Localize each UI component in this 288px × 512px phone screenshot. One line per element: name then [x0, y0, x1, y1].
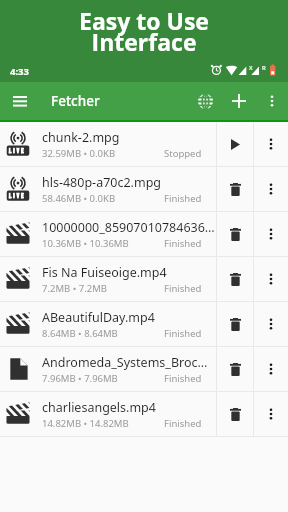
staticText: Easy to Use Interface	[0, 5, 288, 58]
staticText: Finished	[164, 372, 202, 385]
staticText: Finished	[164, 327, 202, 340]
button[interactable]: More options	[255, 82, 288, 120]
button[interactable]: More options	[254, 167, 288, 211]
button[interactable]: 10000000_85907010784636709	[0, 212, 288, 256]
button[interactable]: Fis Na Fuiseoige.mp4	[0, 257, 288, 301]
staticText: 58.46MB • 0.0KB	[42, 192, 116, 205]
staticText: Stopped	[164, 147, 202, 160]
button[interactable]: More options	[254, 212, 288, 256]
button[interactable]: Delete	[217, 212, 253, 256]
staticText: Fetcher	[51, 92, 100, 110]
staticText: Andromeda_Systems_Brochure.pdf	[42, 354, 215, 371]
button[interactable]: hls-480p-a70c2.mpg	[0, 167, 288, 211]
staticText: Finished	[164, 282, 202, 295]
button[interactable]: chunk-2.mpg	[0, 122, 288, 166]
button[interactable]: Delete	[217, 392, 253, 436]
staticText: 7.2MB • 7.2MB	[42, 282, 107, 295]
button[interactable]: Delete	[217, 167, 253, 211]
staticText: hls-480p-a70c2.mpg	[42, 174, 162, 191]
staticText: 32.59MB • 0.0KB	[42, 147, 116, 160]
button[interactable]: charliesangels.mp4	[0, 392, 288, 436]
button[interactable]: Open navigation menu	[0, 82, 39, 120]
button[interactable]: ABeautifulDay.mp4	[0, 302, 288, 346]
button[interactable]: Play	[217, 122, 253, 166]
button[interactable]: Open browser	[188, 82, 222, 120]
button[interactable]: Delete	[217, 302, 253, 346]
staticText: 10.36MB • 10.36MB	[42, 237, 129, 250]
button[interactable]: More options	[254, 347, 288, 391]
button[interactable]: More options	[254, 122, 288, 166]
staticText: Finished	[164, 237, 202, 250]
staticText: 8.64MB • 8.64MB	[42, 327, 118, 340]
staticText: 14.82MB • 14.82MB	[42, 417, 129, 430]
button[interactable]: Andromeda_Systems_Brochure.pdf	[0, 347, 288, 391]
staticText: Finished	[164, 192, 202, 205]
button[interactable]: Delete	[217, 257, 253, 301]
button[interactable]: Add download	[222, 82, 255, 120]
button[interactable]: Delete	[217, 347, 253, 391]
staticText: R	[262, 64, 266, 72]
staticText: 7.96MB • 7.96MB	[42, 372, 118, 385]
button[interactable]: More options	[254, 257, 288, 301]
staticText: 4:33	[10, 65, 29, 78]
staticText: Finished	[164, 417, 202, 430]
staticText: chunk-2.mpg	[42, 129, 120, 146]
staticText: ABeautifulDay.mp4	[42, 309, 155, 326]
staticText: 10000000_85907010784636709	[42, 219, 215, 236]
staticText: charliesangels.mp4	[42, 399, 156, 416]
staticText: X	[249, 64, 253, 72]
button[interactable]: More options	[254, 302, 288, 346]
button[interactable]: More options	[254, 392, 288, 436]
staticText: Fis Na Fuiseoige.mp4	[42, 264, 167, 281]
